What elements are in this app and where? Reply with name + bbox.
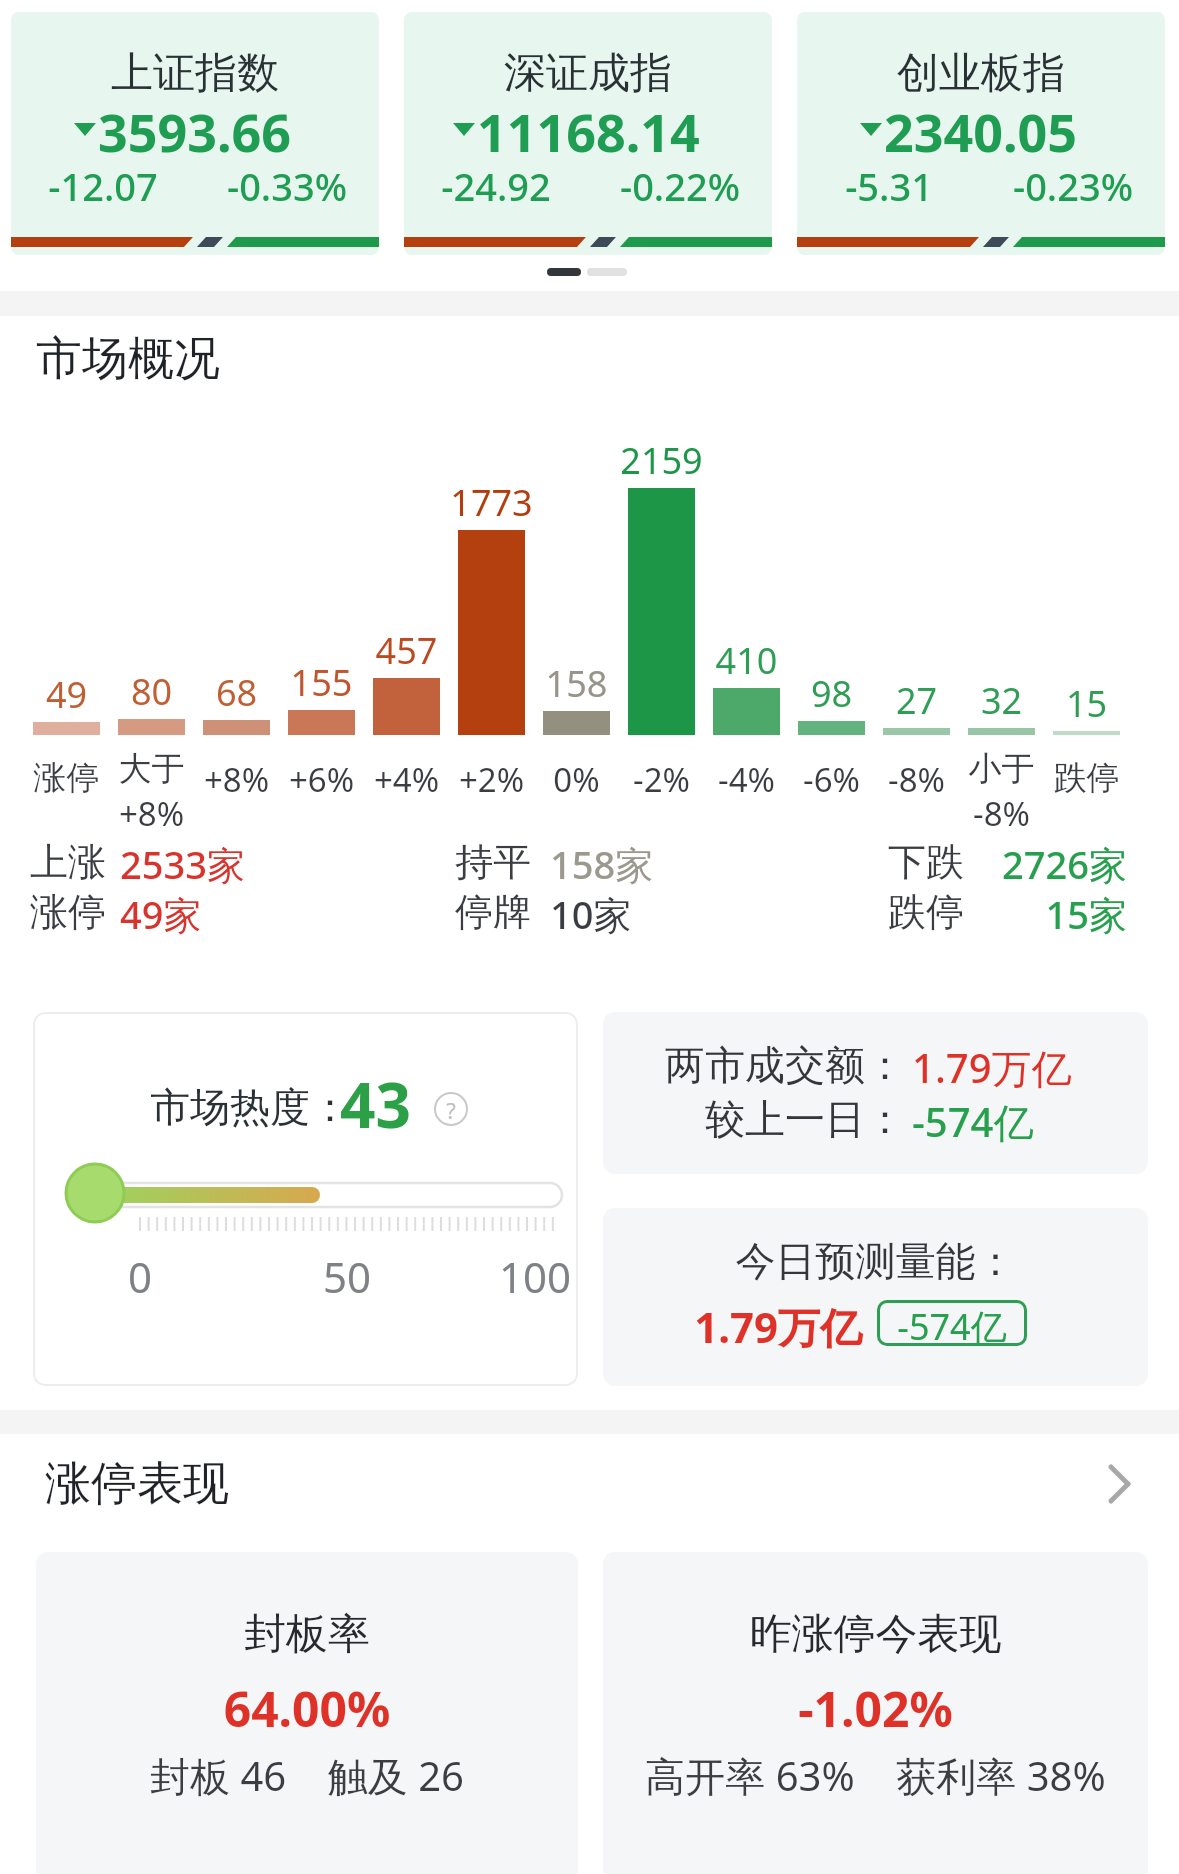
staticText: -12.07 — [11, 160, 195, 212]
staticText: -5.31 — [797, 160, 981, 212]
staticText: 457 — [364, 626, 449, 675]
staticText: 410 — [704, 636, 789, 685]
staticText: 持平 — [455, 838, 531, 886]
staticText: 跌停 — [888, 888, 964, 936]
staticText: 11168.14 — [477, 96, 700, 160]
button[interactable] — [603, 1208, 1148, 1386]
button[interactable] — [603, 1552, 1148, 1874]
staticText: 68 — [194, 668, 279, 717]
button[interactable] — [36, 1552, 578, 1874]
staticText: 涨停 — [30, 888, 106, 936]
staticText: 1.79万亿 — [603, 1298, 862, 1355]
staticText: 0 — [90, 1248, 190, 1305]
staticText: +4% — [364, 757, 449, 802]
staticText: -0.23% — [981, 160, 1165, 212]
staticText: 深证成指 — [404, 47, 772, 100]
staticText: 158 — [534, 659, 619, 708]
button[interactable]: 涨停表现 — [0, 1452, 1179, 1516]
button[interactable] — [603, 1012, 1148, 1174]
staticText: -24.92 — [404, 160, 588, 212]
staticText: 80 — [109, 667, 194, 716]
staticText: 市场概况 — [36, 330, 220, 388]
staticText: 2159 — [619, 436, 704, 485]
staticText: 跌停 — [1044, 757, 1129, 799]
staticText: 15家 — [950, 888, 1127, 940]
staticText: -2% — [619, 757, 704, 802]
staticText: 创业板指 — [797, 47, 1165, 100]
staticText: 大于 +8% — [109, 748, 194, 835]
staticText: -4% — [704, 757, 789, 802]
staticText: 封板率 — [36, 1608, 578, 1661]
staticText: +2% — [449, 757, 534, 802]
staticText: 50 — [297, 1248, 397, 1305]
staticText: 32 — [959, 676, 1044, 725]
staticText: -6% — [789, 757, 874, 802]
staticText: 两市成交额： — [603, 1040, 905, 1090]
staticText: 0% — [534, 757, 619, 802]
staticText: 15 — [1044, 679, 1129, 728]
staticText: -0.22% — [588, 160, 772, 212]
button[interactable]: 创业板指 — [797, 12, 1165, 255]
staticText: 昨涨停今表现 — [603, 1608, 1148, 1661]
staticText: +8% — [194, 757, 279, 802]
staticText: 27 — [874, 676, 959, 725]
staticText: 上涨 — [30, 838, 106, 886]
staticText: 小于 -8% — [959, 748, 1044, 835]
staticText: 上证指数 — [11, 47, 379, 100]
staticText: 涨停表现 — [45, 1455, 229, 1513]
staticText: 封板 46 触及 26 — [36, 1748, 578, 1803]
staticText: -574亿 — [912, 1094, 1034, 1149]
staticText: +6% — [279, 757, 364, 802]
staticText: 3593.66 — [98, 96, 292, 160]
staticText: -1.02% — [603, 1676, 1148, 1741]
staticText: 1773 — [449, 478, 534, 527]
staticText: 今日预测量能： — [603, 1236, 1148, 1286]
button[interactable]: 上证指数 — [11, 12, 379, 255]
staticText: -8% — [874, 757, 959, 802]
staticText: 停牌 — [455, 888, 531, 936]
staticText: 较上一日： — [603, 1094, 905, 1144]
staticText: 100 — [480, 1248, 590, 1305]
staticText: 2726家 — [950, 838, 1127, 890]
button[interactable]: 深证成指 — [404, 12, 772, 255]
staticText: 市场热度： — [150, 1082, 350, 1132]
button[interactable] — [33, 1012, 578, 1386]
staticText: 1.79万亿 — [912, 1040, 1072, 1095]
staticText: 43 — [340, 1062, 411, 1146]
staticText: 涨停 — [24, 757, 109, 799]
staticText: 155 — [279, 658, 364, 707]
staticText: 2340.05 — [884, 96, 1078, 160]
staticText: 下跌 — [888, 838, 964, 886]
staticText: -0.33% — [195, 160, 379, 212]
staticText: -574亿 — [877, 1302, 1027, 1348]
staticText: 49家 — [120, 888, 202, 940]
staticText: 2533家 — [120, 838, 245, 890]
staticText: 158家 — [550, 838, 654, 890]
staticText: 高开率 63% 获利率 38% — [603, 1748, 1148, 1803]
staticText: 49 — [24, 670, 109, 719]
staticText: 64.00% — [36, 1676, 578, 1741]
staticText: 98 — [789, 669, 874, 718]
staticText: 10家 — [550, 888, 632, 940]
staticText: ? — [434, 1095, 468, 1125]
